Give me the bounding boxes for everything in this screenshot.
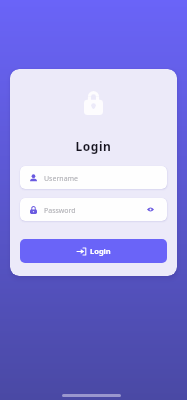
- staticText: Login: [10, 138, 177, 154]
- button[interactable]: Login: [20, 239, 167, 263]
- staticText: Password: [44, 206, 76, 216]
- staticText: Login: [90, 246, 111, 256]
- button[interactable]: Show password: [142, 198, 158, 221]
- staticText: Username: [44, 174, 79, 184]
- button[interactable]: Password: [20, 198, 167, 221]
- button[interactable]: Username: [20, 166, 167, 189]
